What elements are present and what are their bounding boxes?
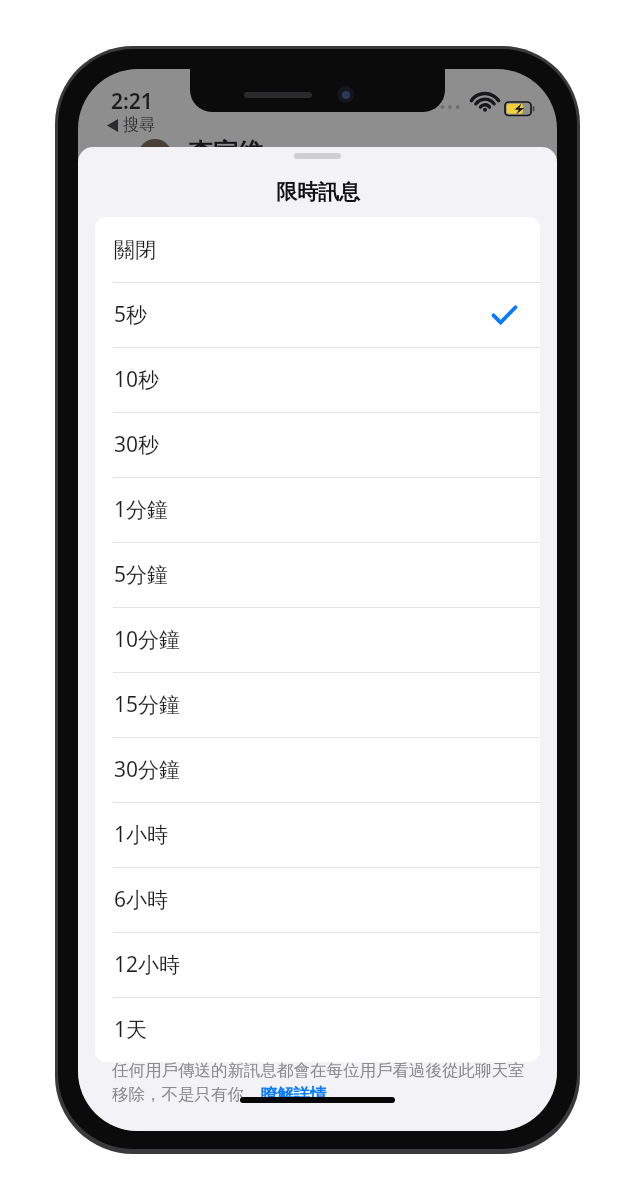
button[interactable]: 10分鐘 xyxy=(95,607,540,672)
button[interactable]: 30分鐘 xyxy=(95,737,540,802)
staticText: 2:21 xyxy=(111,87,153,116)
staticText: 5分鐘 xyxy=(114,560,169,589)
button[interactable]: 6小時 xyxy=(95,867,540,932)
staticText: 10分鐘 xyxy=(114,625,181,654)
button[interactable]: 1小時 xyxy=(95,802,540,867)
button[interactable]: 30秒 xyxy=(95,412,540,477)
staticText: 10秒 xyxy=(114,365,160,394)
button[interactable]: 10秒 xyxy=(95,347,540,412)
staticText: 15分鐘 xyxy=(114,690,181,719)
button[interactable]: 12小時 xyxy=(95,932,540,997)
button[interactable]: 15分鐘 xyxy=(95,672,540,737)
staticText: 限時訊息 xyxy=(276,179,360,205)
button[interactable]: 任何用戶傳送的新訊息都會在每位用戶看過後從此聊天室移除，不是只有你。瞭解詳情 xyxy=(112,1060,528,1105)
staticText: 12小時 xyxy=(114,950,181,979)
button[interactable]: 關閉 xyxy=(95,217,540,282)
staticText: 1分鐘 xyxy=(114,495,169,524)
button[interactable]: 1分鐘 xyxy=(95,477,540,542)
staticText: 30秒 xyxy=(114,430,160,459)
staticText: 1天 xyxy=(114,1015,148,1044)
button[interactable]: 1天 xyxy=(95,997,540,1062)
staticText: 1小時 xyxy=(114,820,169,849)
button[interactable]: 5分鐘 xyxy=(95,542,540,607)
staticText: 李家維 xyxy=(188,137,263,168)
staticText: 5秒 xyxy=(114,300,148,329)
staticText: 30分鐘 xyxy=(114,755,181,784)
staticText: 關閉 xyxy=(114,237,156,263)
button[interactable]: 搜尋 xyxy=(103,113,159,137)
staticText: 6小時 xyxy=(114,885,169,914)
button[interactable]: 5秒 xyxy=(95,282,540,347)
staticText: 搜尋 xyxy=(123,115,155,135)
